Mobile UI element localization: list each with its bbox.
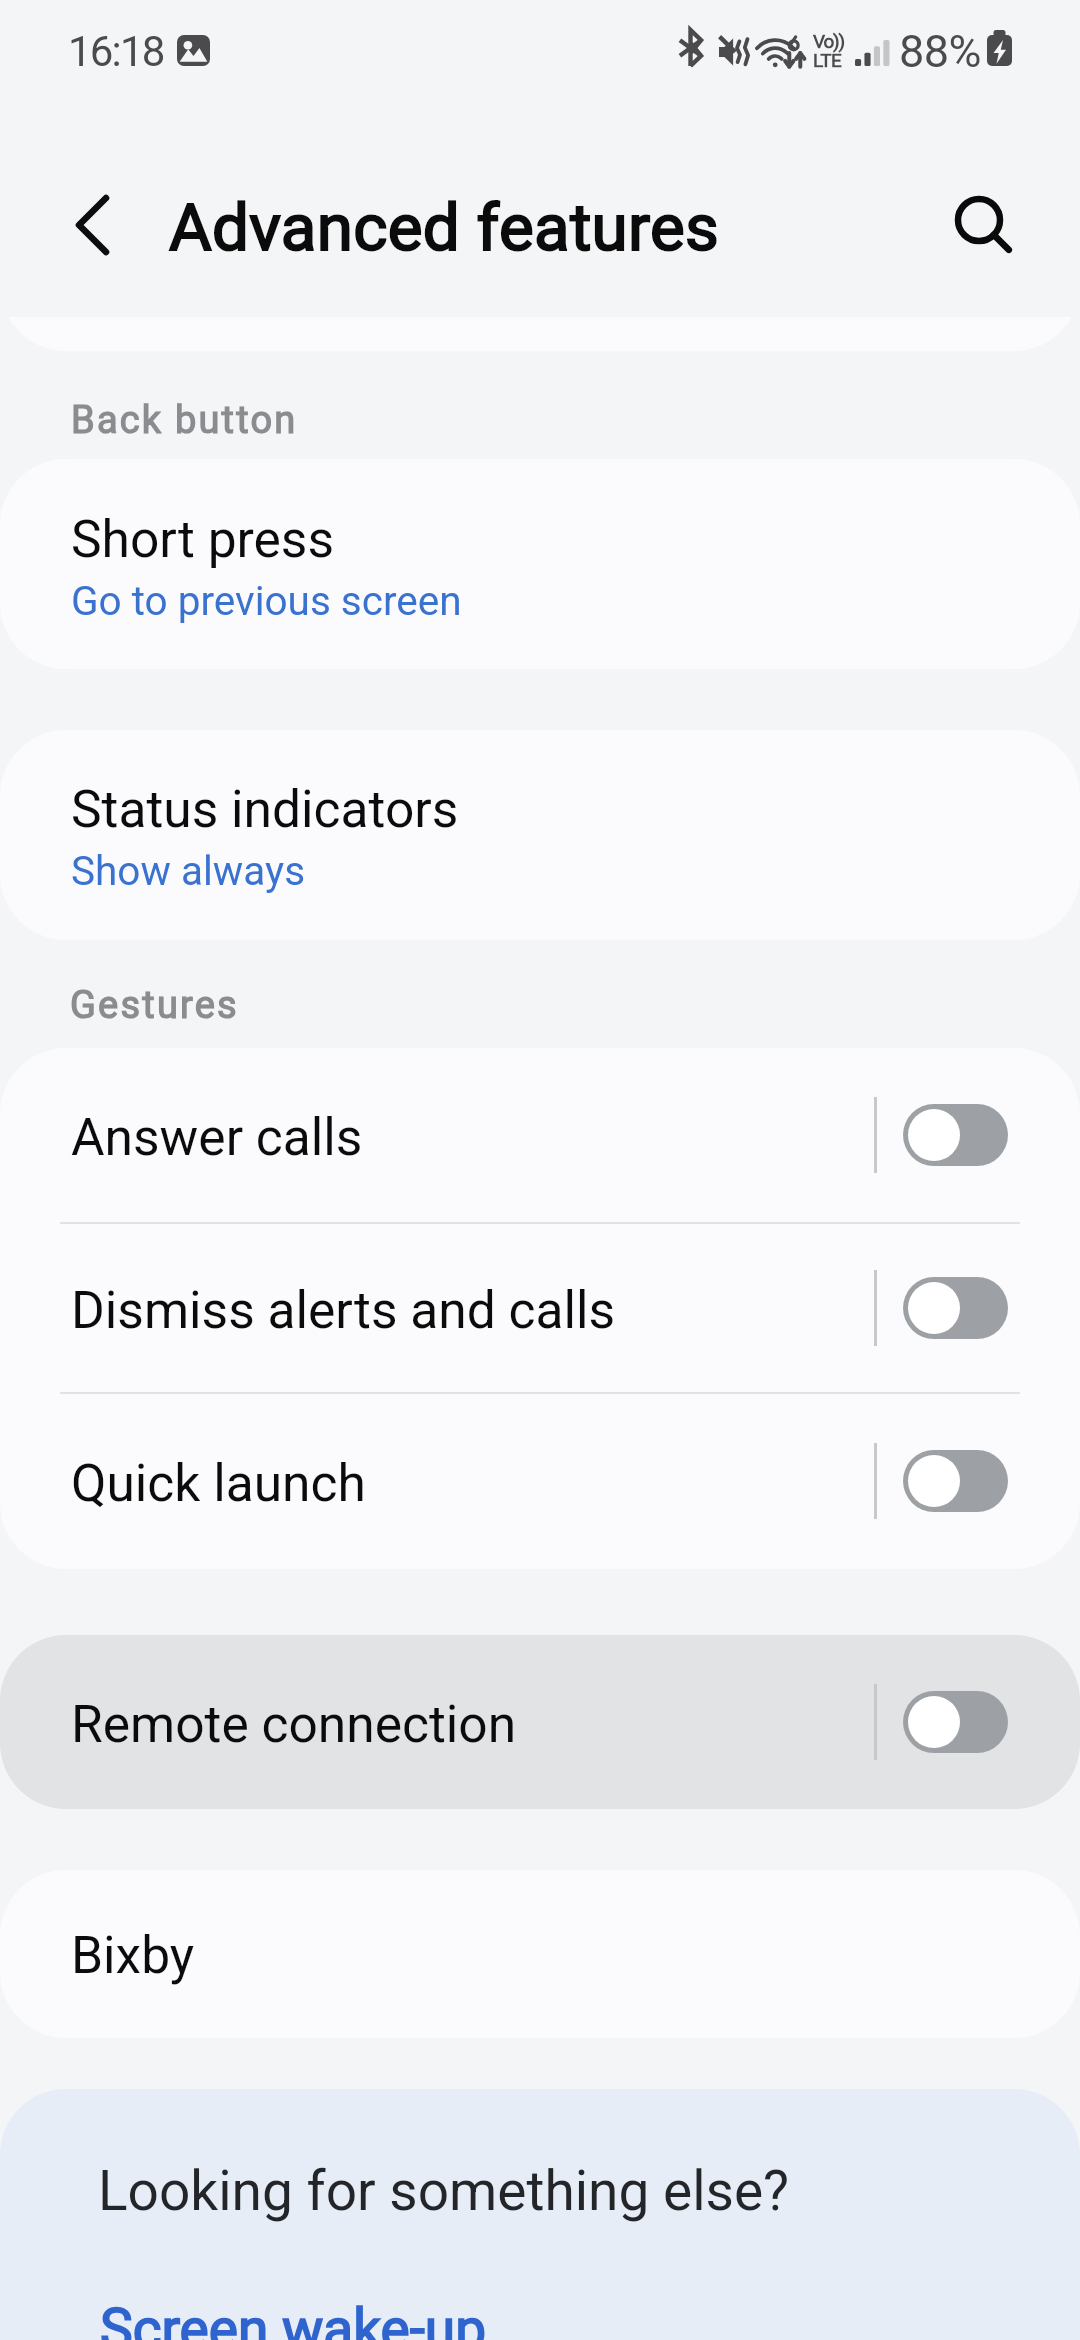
staticText: Bixby: [71, 1925, 195, 1985]
button[interactable]: [0, 1048, 1080, 1222]
button[interactable]: Search: [934, 175, 1026, 267]
staticText: Back button: [71, 398, 298, 443]
staticText: Show always: [71, 847, 306, 894]
button[interactable]: Toggle Answer calls: [903, 1104, 1008, 1166]
button[interactable]: Toggle Remote connection: [903, 1691, 1008, 1753]
button[interactable]: [0, 730, 1080, 940]
staticText: Dismiss alerts and calls: [71, 1280, 616, 1340]
staticText: 88%: [899, 25, 982, 78]
button[interactable]: Toggle Quick launch: [903, 1450, 1008, 1512]
staticText: Go to previous screen: [71, 577, 462, 624]
staticText: Advanced features: [169, 189, 720, 266]
button[interactable]: [0, 459, 1080, 669]
staticText: Gestures: [70, 983, 239, 1028]
button[interactable]: Back: [46, 179, 138, 271]
staticText: Screen wake-up: [100, 2297, 487, 2340]
button[interactable]: [0, 2089, 1080, 2340]
staticText: Short press: [71, 509, 335, 569]
staticText: Quick launch: [71, 1453, 366, 1513]
staticText: Status indicators: [71, 779, 459, 839]
button[interactable]: [0, 1393, 1080, 1569]
button[interactable]: Toggle Dismiss alerts and calls: [903, 1277, 1008, 1339]
staticText: Answer calls: [71, 1107, 363, 1167]
staticText: LTE: [813, 49, 842, 71]
staticText: Remote connection: [71, 1694, 517, 1754]
button[interactable]: [0, 1635, 1080, 1809]
button[interactable]: [0, 1223, 1080, 1393]
button[interactable]: [0, 1870, 1080, 2038]
staticText: Looking for something else?: [98, 2159, 790, 2223]
staticText: 16:18: [68, 27, 164, 76]
staticText: Vo)): [813, 30, 844, 52]
